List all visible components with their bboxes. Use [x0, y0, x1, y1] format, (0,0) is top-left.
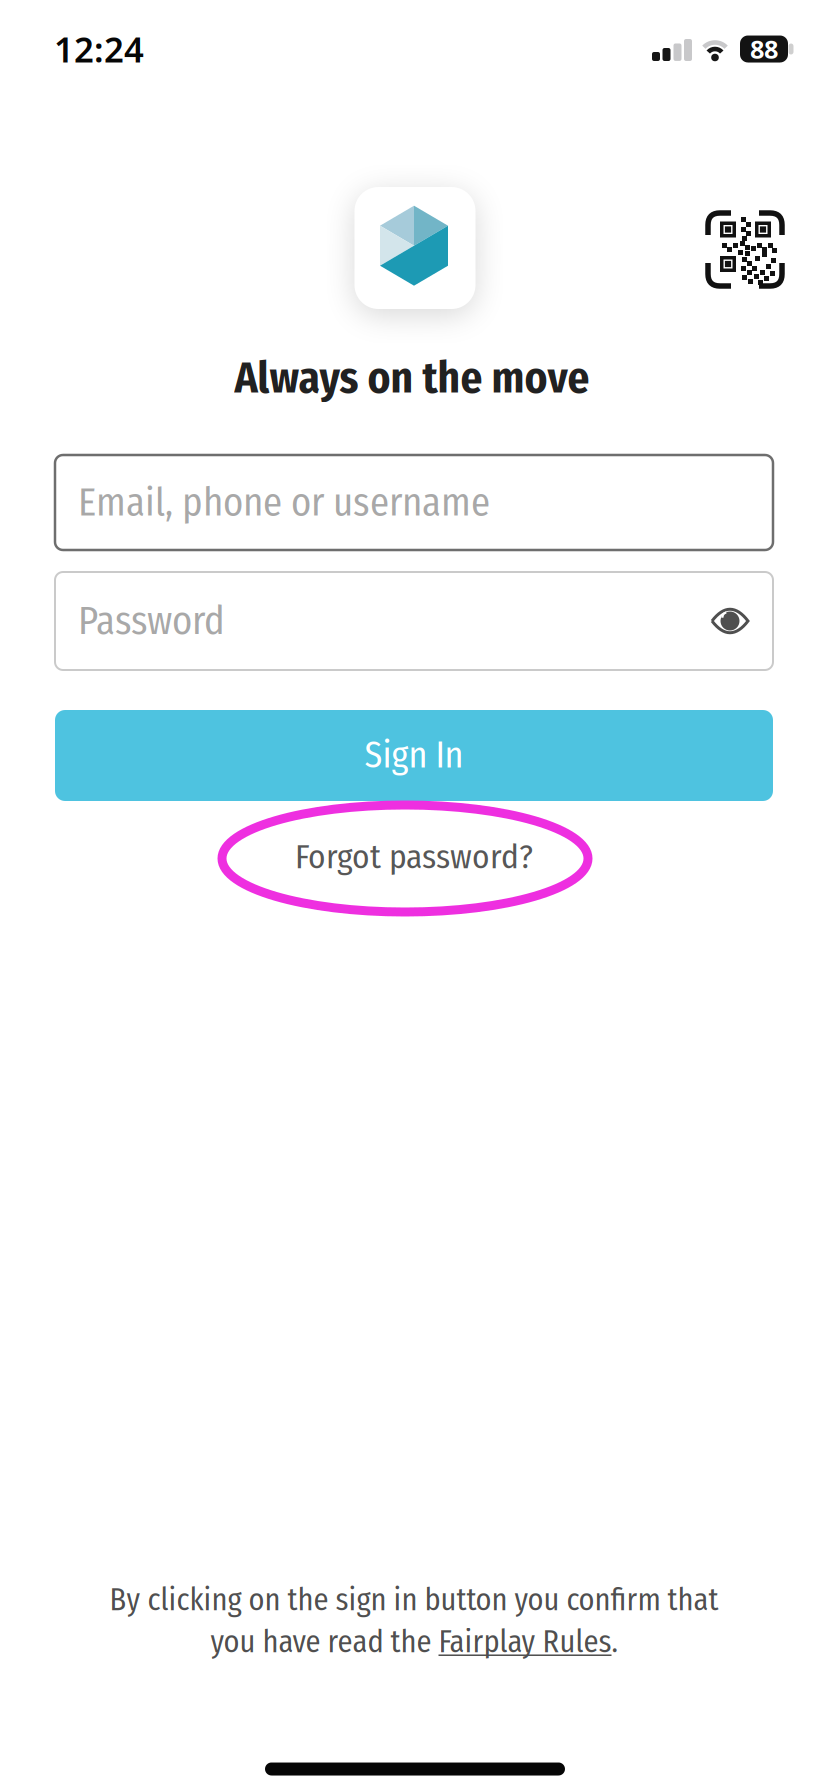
staticText: Password: [78, 598, 225, 644]
staticText: 12:24: [54, 26, 144, 72]
button[interactable]: Forgot password?: [295, 837, 533, 877]
button[interactable]: Fairplay Rules: [438, 1624, 611, 1660]
staticText: Fairplay Rules: [438, 1624, 611, 1660]
staticText: .: [611, 1624, 617, 1660]
button[interactable]: [707, 602, 753, 639]
button[interactable]: Password: [55, 572, 773, 670]
button[interactable]: [0, 0, 828, 1792]
button[interactable]: Email, phone or username: [55, 455, 773, 550]
staticText: you have read the: [210, 1624, 438, 1660]
staticText: 88: [750, 32, 778, 66]
staticText: Forgot password?: [295, 837, 533, 877]
staticText: By clicking on the sign in button you co…: [109, 1582, 718, 1618]
staticText: Sign In: [364, 734, 463, 777]
button[interactable]: Sign In: [55, 710, 773, 801]
staticText: Email, phone or username: [78, 479, 490, 526]
staticText: Always on the move: [234, 352, 589, 404]
